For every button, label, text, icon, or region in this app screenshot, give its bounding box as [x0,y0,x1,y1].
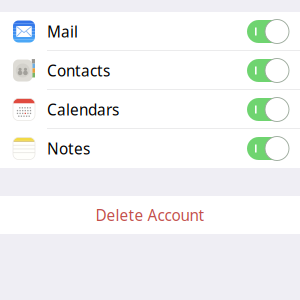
button[interactable]: Delete Account [0,196,300,234]
button[interactable]: Notes [0,129,300,168]
button[interactable]: Notes, on [247,136,300,161]
button[interactable]: Mail [0,12,300,51]
staticText: Contacts [47,60,110,81]
staticText: Delete Account [95,205,204,225]
button[interactable]: Calendars, on [247,97,300,122]
staticText: Notes [47,138,90,159]
staticText: Mail [47,21,78,42]
button[interactable]: Calendars [0,90,300,129]
staticText: Calendars [47,99,119,120]
button[interactable]: Mail, on [247,19,300,44]
button[interactable]: Contacts, on [247,58,300,83]
button[interactable]: Contacts [0,51,300,90]
